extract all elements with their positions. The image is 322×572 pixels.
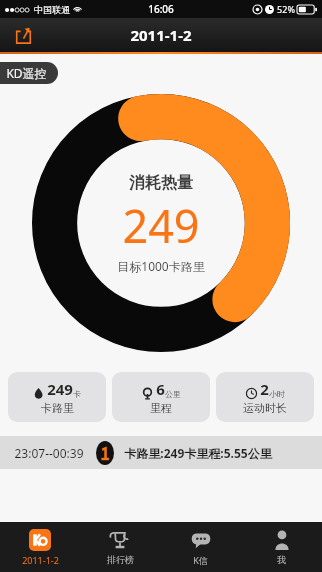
button[interactable]: Messages — [160, 522, 241, 572]
other: Activity badge — [96, 441, 114, 465]
button[interactable]: Profile — [241, 522, 322, 572]
staticText: 2011-1-2 — [22, 554, 59, 566]
other: Calories — [33, 388, 44, 399]
button[interactable]: Home — [0, 522, 80, 572]
button[interactable]: Duration — [216, 372, 314, 422]
staticText: 目标1000卡路里 — [117, 258, 205, 274]
button[interactable]: Share — [10, 22, 36, 48]
other: Duration — [246, 388, 257, 399]
staticText: 249 — [122, 195, 200, 256]
staticText: 卡路里 — [41, 401, 74, 415]
button[interactable]: Distance — [112, 372, 210, 422]
button[interactable]: Calories — [8, 372, 106, 422]
button[interactable]: Ranking — [80, 522, 160, 572]
staticText: 卡 — [73, 389, 81, 399]
staticText: 排行榜 — [107, 554, 134, 565]
staticText: 消耗热量 — [129, 173, 193, 193]
staticText: K信 — [193, 554, 208, 566]
staticText: 16:06 — [148, 2, 174, 16]
staticText: KD遥控 — [6, 65, 47, 81]
staticText: 2011-1-2 — [130, 25, 192, 45]
staticText: 运动时长 — [243, 401, 287, 415]
staticText: 2 — [260, 379, 269, 399]
button[interactable]: KD遥控 — [0, 62, 58, 84]
staticText: 23:07--00:39 — [14, 445, 84, 461]
staticText: 里程 — [150, 401, 172, 415]
other: Distance — [142, 388, 153, 399]
staticText: 中国联通 — [34, 4, 70, 15]
staticText: 小时 — [269, 389, 285, 399]
staticText: 52% — [277, 3, 295, 15]
staticText: 卡路里:249卡里程:5.55公里 — [124, 445, 272, 461]
staticText: 公里 — [165, 389, 181, 399]
staticText: 249 — [47, 379, 73, 399]
staticText: 6 — [156, 379, 165, 399]
staticText: 我 — [277, 554, 286, 565]
button[interactable]: 23:07--00:39 — [0, 436, 322, 469]
